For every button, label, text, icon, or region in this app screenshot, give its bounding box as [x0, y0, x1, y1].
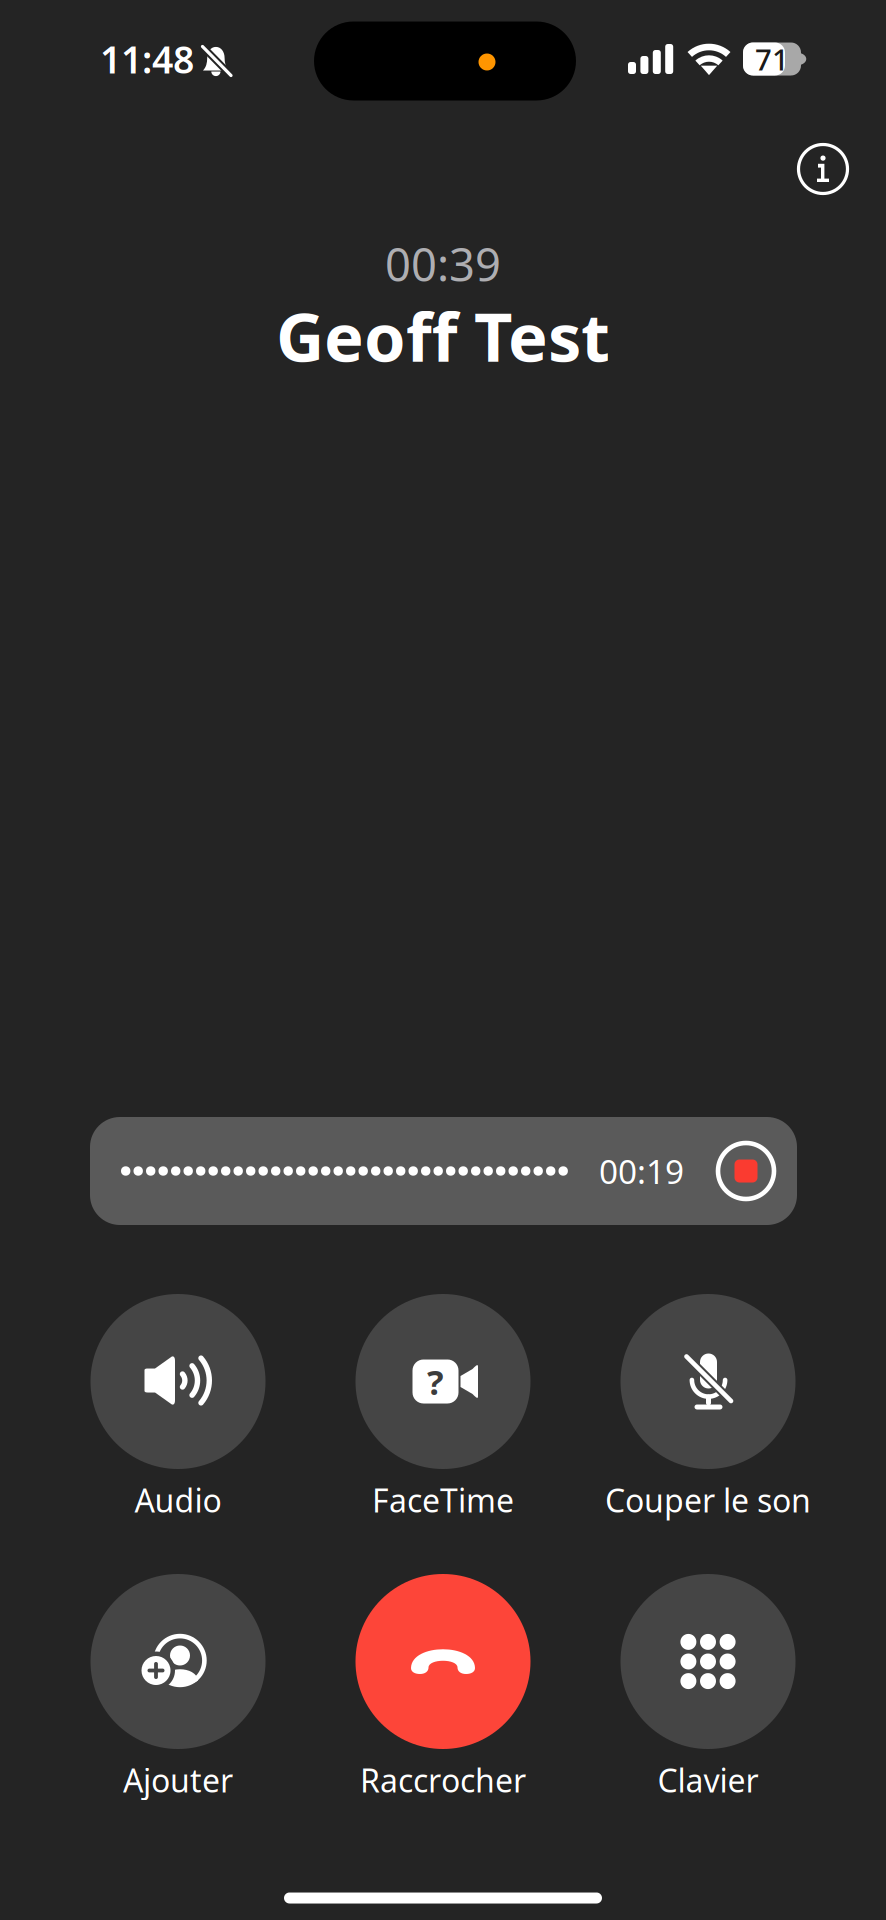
- staticText: Couper le son: [605, 1479, 811, 1521]
- staticText: Audio: [134, 1479, 221, 1521]
- staticText: 00:19: [599, 1149, 684, 1193]
- button[interactable]: Ajouter: [28, 1574, 328, 1806]
- staticText: Clavier: [657, 1759, 758, 1801]
- staticText: Geoff Test: [276, 292, 610, 380]
- button[interactable]: Couper le son: [558, 1294, 858, 1526]
- button[interactable]: Audio: [28, 1294, 328, 1526]
- button[interactable]: ?: [293, 1294, 593, 1526]
- button[interactable]: Raccrocher: [293, 1574, 593, 1806]
- staticText: Raccrocher: [360, 1759, 526, 1801]
- staticText: 71: [755, 39, 789, 78]
- button[interactable]: Clavier: [558, 1574, 858, 1806]
- staticText: 11:48: [100, 34, 194, 84]
- staticText: Ajouter: [123, 1759, 233, 1801]
- button[interactable]: Arrêter l'enregistrement: [710, 1135, 782, 1207]
- button[interactable]: Informations sur l'appel: [785, 131, 861, 207]
- staticText: ?: [427, 1358, 444, 1404]
- staticText: 00:39: [385, 234, 501, 294]
- staticText: FaceTime: [372, 1479, 514, 1521]
